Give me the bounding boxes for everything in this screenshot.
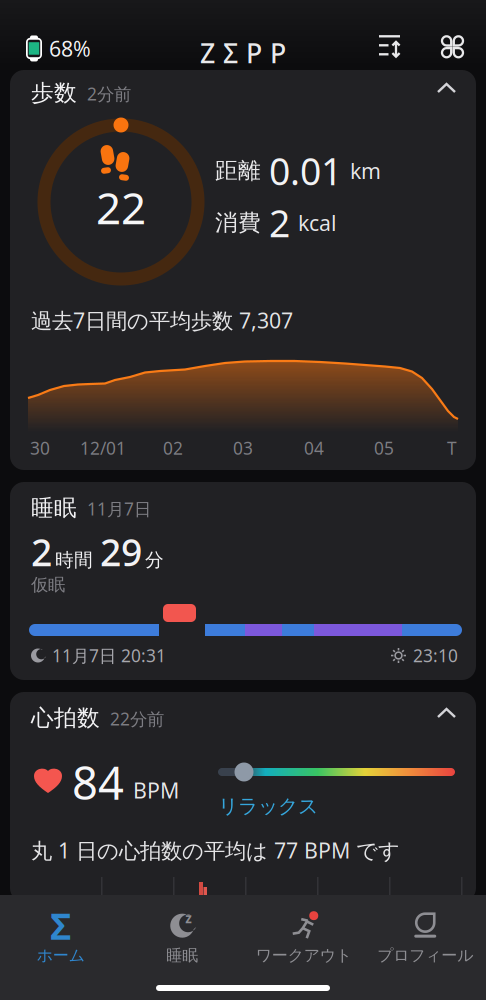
staticText: 03 [233, 436, 253, 459]
button[interactable]: Σ [0, 903, 121, 975]
staticText: 04 [304, 436, 324, 459]
staticText: 睡眠 [166, 946, 198, 965]
staticText: Σ [223, 35, 238, 71]
staticText: Σ [50, 902, 71, 950]
button[interactable]: ウォッチのバッテリー 68% [26, 34, 91, 63]
staticText: P [246, 35, 262, 71]
button[interactable]: ワークアウト [243, 903, 364, 975]
button[interactable]: プロフィール [364, 903, 486, 975]
button[interactable]: z [121, 903, 243, 975]
staticText: 睡眠 [31, 494, 77, 522]
staticText: 12/01 [80, 436, 126, 459]
staticText: 11月7日 [87, 497, 151, 520]
staticText: 29 [100, 527, 142, 577]
button[interactable]: 並べ替え [373, 29, 407, 63]
staticText: ホーム [37, 946, 85, 965]
staticText: プロフィール [377, 946, 473, 965]
button[interactable]: カード管理 [436, 30, 469, 63]
staticText: 2 [31, 527, 52, 577]
staticText: kcal [298, 209, 337, 237]
staticText: T [447, 436, 457, 459]
staticText: 84 [72, 752, 124, 812]
staticText: 過去7日間の平均歩数 7,307 [31, 306, 293, 334]
staticText: 11月7日 20:31 [52, 644, 166, 667]
staticText: 歩数 [31, 79, 77, 107]
staticText: 2分前 [87, 82, 131, 105]
staticText: 心拍数 [31, 704, 100, 732]
staticText: リラックス [218, 794, 318, 819]
button[interactable]: 心拍数 [10, 692, 476, 902]
staticText: 23:10 [413, 644, 458, 667]
staticText: 消費 [215, 209, 261, 237]
staticText: 0.01 [269, 146, 342, 196]
button[interactable]: 睡眠 [10, 482, 476, 680]
staticText: 時間 [55, 549, 93, 571]
staticText: 分 [145, 549, 164, 571]
button[interactable]: 歩数 [10, 70, 476, 470]
staticText: BPM [133, 776, 179, 804]
staticText: ワークアウト [256, 946, 352, 965]
staticText: 30 [30, 436, 50, 459]
staticText: 22分前 [110, 707, 164, 730]
staticText: 68% [49, 34, 91, 63]
staticText: Z [200, 35, 215, 71]
staticText: P [270, 35, 286, 71]
staticText: km [350, 157, 381, 185]
staticText: 22 [96, 178, 146, 236]
staticText: 2 [269, 198, 290, 248]
staticText: 距離 [215, 157, 261, 185]
staticText: 05 [374, 436, 394, 459]
staticText: 02 [163, 436, 183, 459]
staticText: 仮眠 [31, 574, 65, 595]
staticText: z [185, 909, 192, 927]
staticText: 丸 1 日の心拍数の平均は 77 BPM です [31, 836, 400, 864]
